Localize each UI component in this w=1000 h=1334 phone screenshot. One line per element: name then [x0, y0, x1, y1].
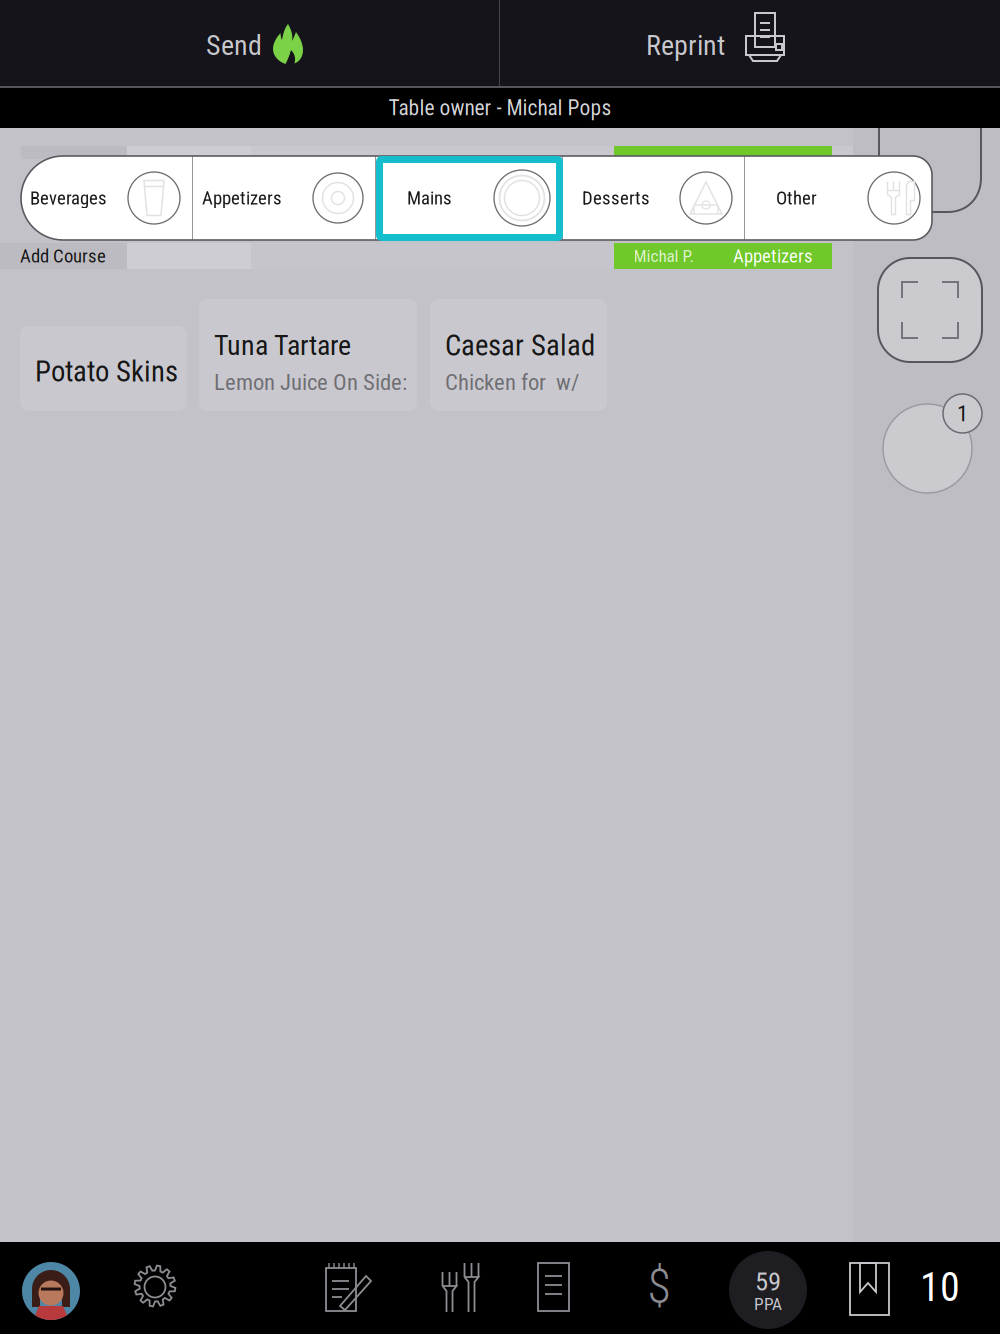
staticText: 1	[957, 400, 968, 427]
button[interactable]: Appetizers	[193, 156, 375, 240]
button[interactable]: Menu items	[430, 1262, 470, 1313]
staticText: Michal P.	[633, 246, 694, 266]
button[interactable]: Check	[537, 1262, 570, 1312]
staticText: Lemon Juice On Side:	[214, 369, 407, 396]
button[interactable]: Payments	[642, 1256, 676, 1316]
button[interactable]: Desserts	[563, 156, 744, 240]
button[interactable]: Settings	[134, 1263, 176, 1309]
staticText: Caesar Salad	[445, 329, 595, 363]
staticText: Desserts	[582, 187, 650, 209]
staticText: Reprint	[646, 29, 725, 62]
staticText: Add Course	[20, 245, 106, 267]
staticText: Tuna Tartare	[214, 329, 351, 362]
staticText: Mains	[407, 187, 452, 209]
staticText: 10	[920, 1264, 960, 1311]
staticText: Other	[776, 187, 817, 209]
staticText: Beverages	[30, 187, 107, 209]
staticText: PPA	[754, 1294, 782, 1314]
staticText: Table owner - Michal Pops	[388, 95, 611, 121]
staticText: 59	[755, 1266, 781, 1297]
button[interactable]: Order notes	[325, 1262, 375, 1312]
staticText: Potato Skins	[35, 355, 178, 389]
button[interactable]: Reprint	[500, 0, 1000, 87]
staticText: Chicken for w/	[445, 369, 579, 396]
button[interactable]: Caesar Salad	[430, 299, 607, 411]
button[interactable]: Other	[745, 156, 932, 240]
button[interactable]: Per person average 59	[729, 1251, 807, 1329]
button[interactable]: Tuna Tartare	[199, 299, 417, 411]
button[interactable]: Send	[0, 0, 499, 87]
staticText: Appetizers	[733, 245, 813, 267]
staticText: Send	[206, 29, 262, 62]
button[interactable]: Beverages	[21, 156, 192, 240]
button[interactable]: Bookmark	[849, 1262, 890, 1316]
staticText: $	[647, 1258, 670, 1314]
button[interactable]: Profile	[22, 1262, 80, 1320]
button[interactable]: Potato Skins	[20, 326, 187, 411]
staticText: Appetizers	[202, 187, 282, 209]
button[interactable]: Mains	[376, 156, 562, 240]
